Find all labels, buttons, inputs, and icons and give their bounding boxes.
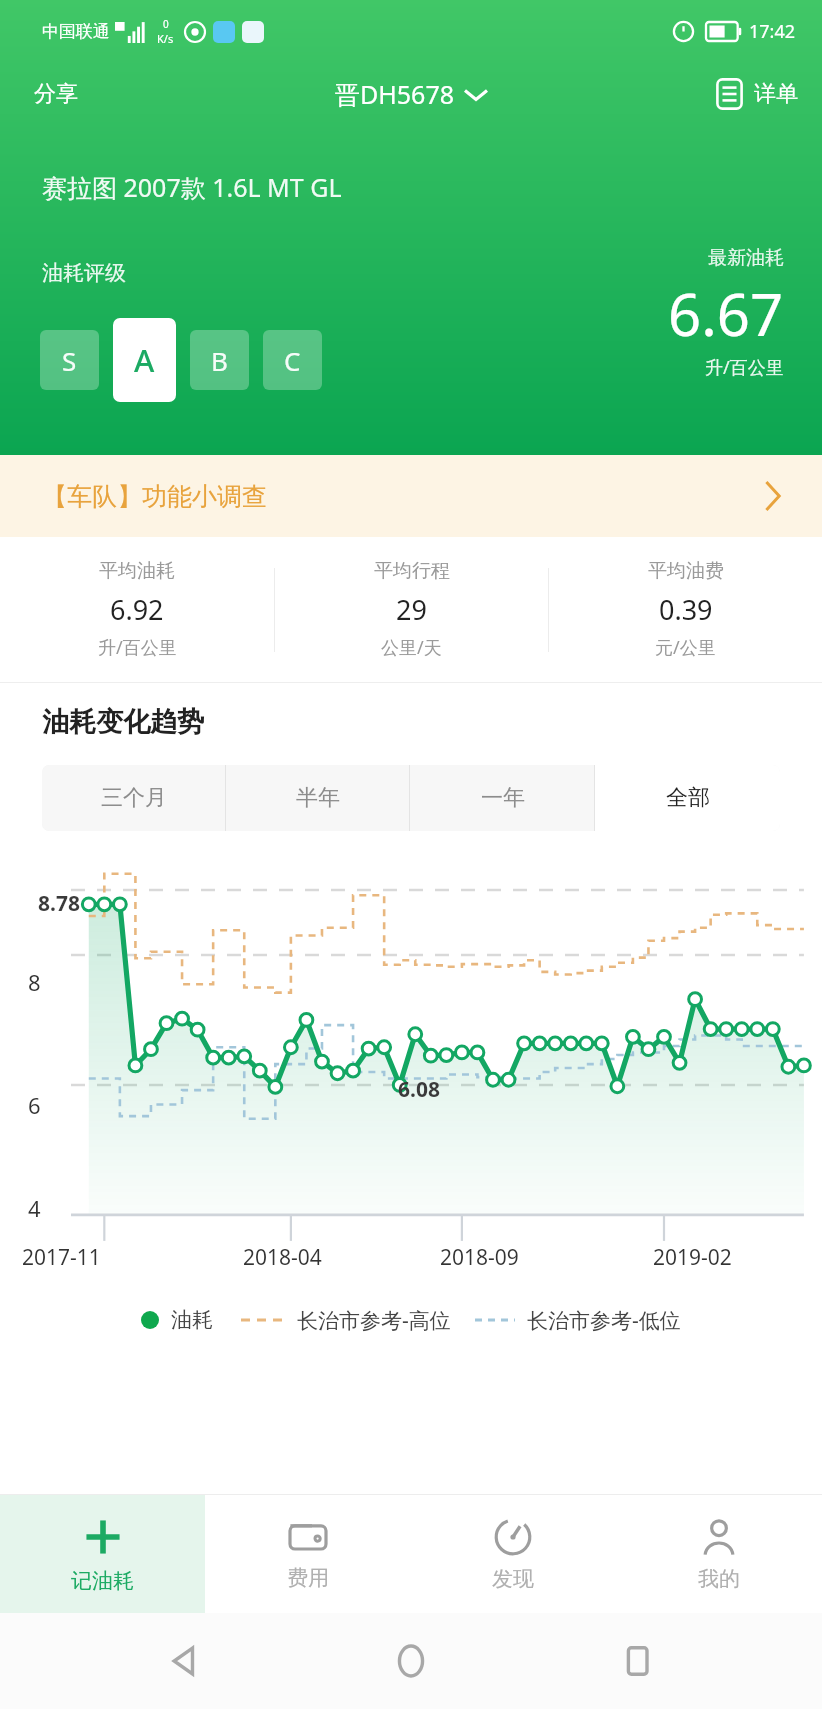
staticText: 平均油费 <box>648 559 724 583</box>
staticText: 详单 <box>754 80 798 108</box>
button[interactable]: Home <box>369 1619 453 1703</box>
staticText: 6.67 <box>668 274 784 353</box>
button[interactable]: 晋DH5678 <box>321 67 501 121</box>
button[interactable]: 我的 <box>616 1495 822 1613</box>
staticText: B <box>211 343 228 378</box>
button[interactable]: Back <box>143 1619 227 1703</box>
button[interactable]: 发现 <box>410 1495 616 1613</box>
button[interactable]: 三个月 <box>42 765 226 831</box>
staticText: 油耗变化趋势 <box>42 705 204 739</box>
staticText: 三个月 <box>101 784 167 812</box>
button[interactable]: 全部 <box>595 765 780 831</box>
staticText: 8 <box>28 967 41 997</box>
staticText: 平均行程 <box>374 559 450 583</box>
button[interactable]: 分享 <box>0 68 112 120</box>
staticText: 29 <box>396 591 427 628</box>
button[interactable]: S <box>40 330 99 390</box>
staticText: 半年 <box>296 784 340 812</box>
button[interactable]: C <box>263 330 322 390</box>
button[interactable]: 记油耗 <box>0 1495 205 1613</box>
button[interactable]: 【车队】功能小调查 <box>0 455 822 537</box>
staticText: 2019-02 <box>653 1243 732 1272</box>
staticText: 6.08 <box>398 1075 440 1104</box>
staticText: 17:42 <box>749 19 796 44</box>
staticText: 2017-11 <box>22 1243 101 1272</box>
staticText: 8.78 <box>38 889 80 918</box>
staticText: C <box>284 343 301 378</box>
staticText: A <box>134 339 155 381</box>
staticText: 0.39 <box>659 591 713 628</box>
staticText: 晋DH5678 <box>335 77 454 111</box>
staticText: 0 <box>163 17 169 31</box>
staticText: 费用 <box>287 1565 329 1591</box>
staticText: 升/百公里 <box>705 355 784 380</box>
staticText: 油耗评级 <box>42 260 126 286</box>
staticText: 我的 <box>698 1566 740 1592</box>
staticText: 油耗 <box>171 1307 213 1333</box>
staticText: 中国联通 <box>42 21 110 42</box>
staticText: 发现 <box>492 1566 534 1592</box>
button[interactable]: A <box>113 318 176 402</box>
button[interactable]: 费用 <box>205 1495 410 1613</box>
staticText: 最新油耗 <box>708 246 784 270</box>
staticText: 升/百公里 <box>98 635 177 660</box>
staticText: S <box>62 343 77 378</box>
button[interactable]: B <box>190 330 249 390</box>
staticText: 一年 <box>481 784 525 812</box>
staticText: 平均油耗 <box>99 559 175 583</box>
staticText: 赛拉图 2007款 1.6L MT GL <box>42 170 342 204</box>
staticText: 6 <box>28 1090 41 1120</box>
staticText: 全部 <box>666 784 710 812</box>
button[interactable]: 半年 <box>226 765 410 831</box>
staticText: 记油耗 <box>71 1568 134 1594</box>
button[interactable]: 详单 <box>692 70 822 118</box>
staticText: 4 <box>28 1193 41 1223</box>
button[interactable]: 一年 <box>410 765 595 831</box>
staticText: 长治市参考-低位 <box>527 1306 681 1335</box>
staticText: 6.92 <box>110 591 164 628</box>
staticText: 【车队】功能小调查 <box>42 481 267 512</box>
button[interactable]: Recents <box>596 1619 680 1703</box>
staticText: 2018-04 <box>243 1243 322 1272</box>
staticText: 分享 <box>34 80 78 108</box>
staticText: 2018-09 <box>440 1243 519 1272</box>
staticText: 公里/天 <box>381 635 442 660</box>
staticText: 长治市参考-高位 <box>297 1306 451 1335</box>
staticText: 元/公里 <box>655 635 716 660</box>
staticText: K/s <box>157 31 174 46</box>
